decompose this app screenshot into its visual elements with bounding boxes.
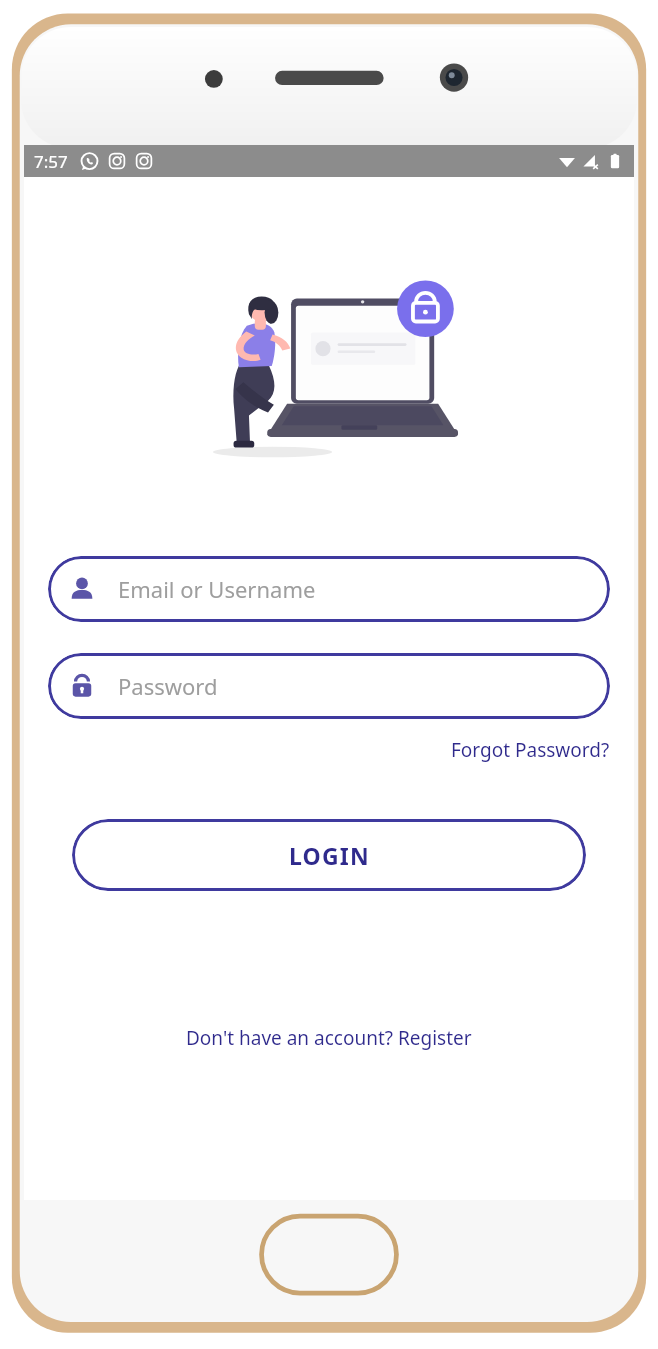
staticText: Password [118,671,218,701]
button[interactable]: Forgot Password? [447,733,614,767]
staticText: Don't have an account? Register [186,1025,472,1051]
button[interactable]: Password [48,653,610,719]
staticText: Email or Username [118,574,316,604]
button[interactable]: Don't have an account? Register [176,1019,482,1057]
button[interactable]: Email or Username [48,556,610,622]
staticText: Forgot Password? [451,737,610,763]
staticText: LOGIN [289,840,370,871]
staticText: 7:57 [34,150,68,173]
button[interactable]: LOGIN [72,819,586,891]
